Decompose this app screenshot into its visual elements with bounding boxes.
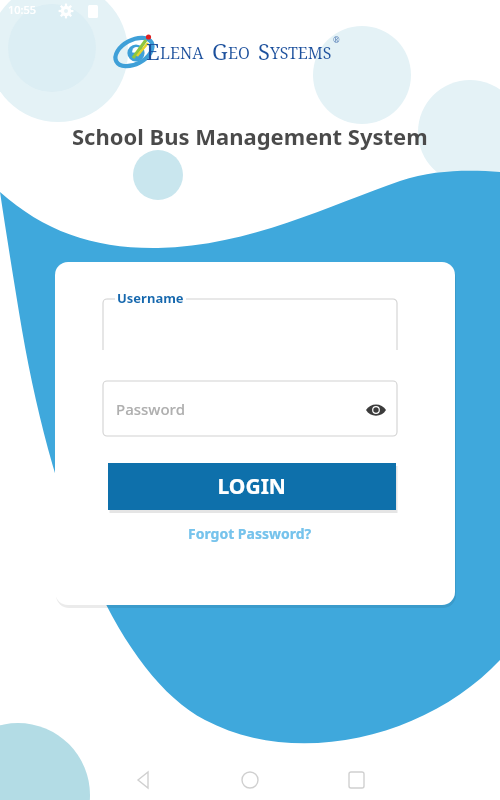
button[interactable]: Username field xyxy=(103,299,397,350)
button[interactable]: Show password xyxy=(362,394,390,424)
button[interactable]: Password field xyxy=(103,381,376,436)
button[interactable]: Forgot Password? xyxy=(180,521,320,545)
button[interactable]: Login xyxy=(108,463,396,510)
